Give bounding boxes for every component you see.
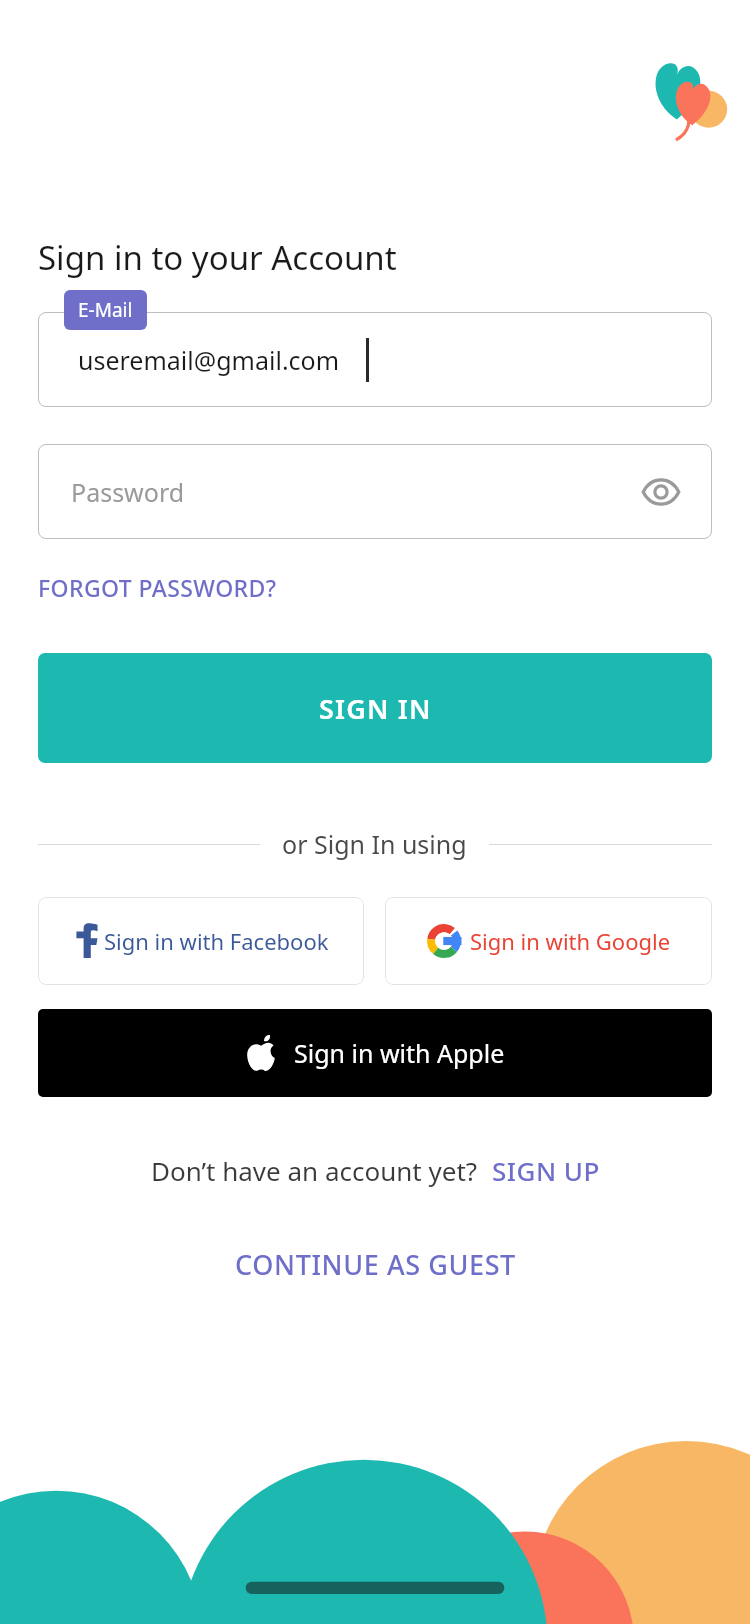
button[interactable]: useremail@gmail.com bbox=[38, 312, 712, 407]
staticText: Sign in to your Account bbox=[38, 235, 397, 280]
button[interactable]: Sign in with Apple bbox=[38, 1009, 712, 1097]
button[interactable]: Show password bbox=[638, 469, 684, 515]
staticText: Sign in with Google bbox=[470, 926, 671, 956]
button[interactable]: Sign in with Google bbox=[385, 897, 712, 985]
staticText: Sign in with Facebook bbox=[104, 926, 329, 956]
staticText: or Sign In using bbox=[282, 827, 467, 861]
staticText: CONTINUE AS GUEST bbox=[235, 1246, 516, 1283]
staticText: useremail@gmail.com bbox=[78, 343, 340, 377]
button[interactable]: Password bbox=[38, 444, 712, 539]
staticText: E-Mail bbox=[78, 297, 133, 323]
staticText: Password bbox=[71, 475, 638, 509]
button[interactable]: CONTINUE AS GUEST bbox=[225, 1240, 526, 1289]
button[interactable]: SIGN IN bbox=[38, 653, 712, 763]
staticText: FORGOT PASSWORD? bbox=[38, 572, 277, 603]
staticText: SIGN IN bbox=[319, 690, 432, 727]
staticText: Sign in with Apple bbox=[294, 1036, 505, 1070]
button[interactable]: Sign in with Facebook bbox=[38, 897, 364, 985]
staticText: SIGN UP bbox=[492, 1153, 600, 1188]
staticText: Don’t have an account yet? bbox=[151, 1153, 478, 1188]
button[interactable]: SIGN UP bbox=[478, 1149, 600, 1192]
button[interactable]: FORGOT PASSWORD? bbox=[38, 568, 277, 607]
